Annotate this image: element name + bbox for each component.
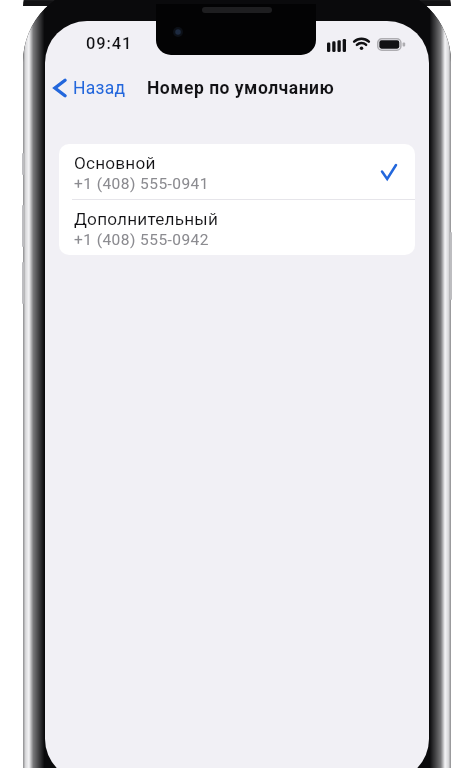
button[interactable]: Назад xyxy=(50,63,130,113)
other: Battery xyxy=(377,38,406,51)
other: Wi-Fi xyxy=(353,38,370,50)
staticText: +1 (408) 555-0942 xyxy=(74,231,209,249)
button[interactable]: Основной xyxy=(59,144,415,199)
staticText: Дополнительный xyxy=(74,209,219,229)
staticText: Назад xyxy=(73,78,126,99)
staticText: 09:41 xyxy=(86,34,133,53)
other: Cellular signal xyxy=(327,39,346,52)
staticText: Номер по умолчанию xyxy=(147,78,335,99)
staticText: +1 (408) 555-0941 xyxy=(74,175,209,193)
button[interactable]: Дополнительный xyxy=(59,200,415,255)
staticText: Основной xyxy=(74,153,156,173)
